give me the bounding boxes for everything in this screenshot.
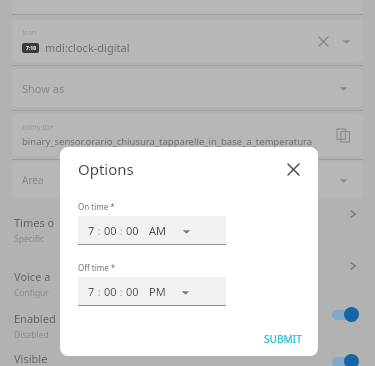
button[interactable]: Voice assistants	[344, 257, 362, 275]
staticText: Show as	[22, 81, 65, 96]
staticText: 7	[88, 223, 95, 238]
staticText: AM	[149, 223, 167, 238]
button[interactable]: Clear	[313, 31, 333, 51]
staticText: Icon	[22, 28, 37, 38]
staticText: PM	[149, 284, 166, 299]
staticText: Enabled	[14, 311, 56, 326]
button[interactable]: SUBMIT	[258, 328, 308, 350]
button[interactable]: Enabled toggle	[330, 305, 364, 323]
button[interactable]: Close	[280, 156, 306, 182]
staticText: 00	[126, 284, 139, 299]
staticText: :	[95, 284, 104, 299]
staticText: 00	[126, 223, 139, 238]
button[interactable]: Visible toggle	[330, 352, 364, 366]
staticText: Configur	[14, 287, 49, 299]
staticText: 00	[104, 223, 117, 238]
staticText: Area	[22, 173, 44, 187]
button[interactable]: Area	[12, 163, 363, 197]
staticText: binary_sensor.orario_chiusura_tapparelle…	[22, 135, 313, 148]
staticText: :	[117, 223, 126, 238]
button[interactable]: Show as	[12, 69, 363, 107]
staticText: Options	[78, 159, 134, 179]
staticText: SUBMIT	[264, 332, 302, 346]
staticText: Voice a	[14, 269, 51, 284]
button[interactable]: Icon	[12, 20, 363, 62]
staticText: 7:10	[26, 45, 36, 52]
staticText: :	[117, 284, 126, 299]
staticText: 7	[88, 284, 95, 299]
button[interactable]: Copy entity id	[333, 125, 353, 145]
staticText: 00	[104, 284, 117, 299]
button[interactable]: 7	[78, 216, 226, 244]
staticText: Entity ID*	[22, 123, 54, 133]
staticText: Visible	[14, 351, 48, 366]
staticText: Times o	[14, 215, 55, 230]
button[interactable]: 7	[78, 277, 226, 305]
staticText: Disabled	[14, 329, 49, 341]
button[interactable]: Open icon picker	[337, 32, 355, 50]
button[interactable]: Entity ID*	[12, 114, 363, 156]
staticText: mdi:clock-digital	[45, 40, 130, 55]
staticText: On time *	[78, 201, 115, 212]
staticText: Specific	[14, 233, 45, 245]
staticText: Off time *	[78, 262, 116, 273]
staticText: :	[95, 223, 104, 238]
button[interactable]: Times of day	[344, 205, 362, 223]
